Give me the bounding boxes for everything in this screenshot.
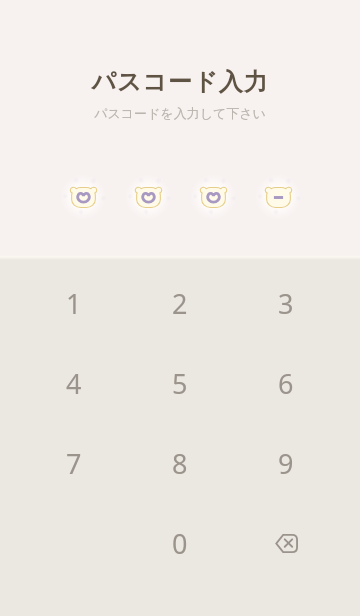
button[interactable]: 6	[233, 343, 339, 423]
button[interactable]: 3	[233, 263, 339, 343]
button[interactable]: 5	[127, 343, 233, 423]
button[interactable]: 8	[127, 423, 233, 503]
staticText: 3	[278, 285, 294, 322]
staticText: 4	[66, 365, 82, 402]
button[interactable]: 7	[21, 423, 127, 503]
staticText: 2	[172, 285, 188, 322]
staticText: パスコードを入力して下さい	[94, 105, 266, 121]
staticText: 0	[172, 525, 188, 562]
button[interactable]: 9	[233, 423, 339, 503]
staticText: パスコード入力	[91, 67, 269, 97]
button[interactable]: 0	[127, 503, 233, 583]
staticText: 7	[66, 445, 82, 482]
staticText: 8	[172, 445, 188, 482]
staticText: 1	[66, 285, 82, 322]
staticText: 6	[278, 365, 294, 402]
button[interactable]: 1	[21, 263, 127, 343]
staticText: 9	[278, 445, 294, 482]
button[interactable]: Delete	[233, 503, 339, 583]
button[interactable]: 2	[127, 263, 233, 343]
button[interactable]: 4	[21, 343, 127, 423]
staticText: 5	[172, 365, 188, 402]
